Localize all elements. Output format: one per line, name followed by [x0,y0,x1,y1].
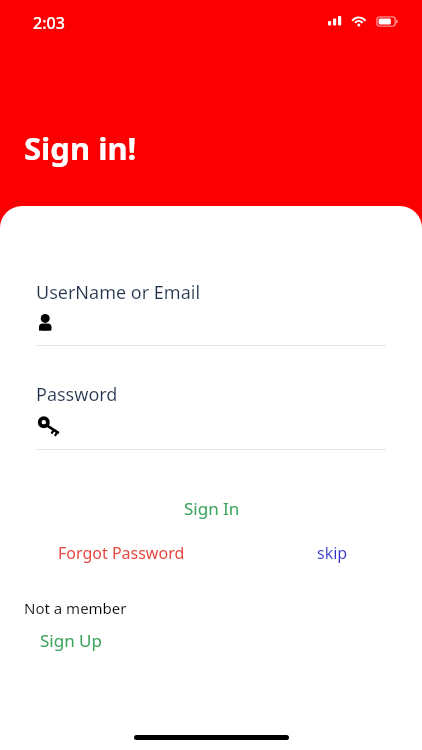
staticText: Not a member [24,598,127,618]
button[interactable]: Forgot Password [56,540,187,566]
other: User name field [36,313,56,333]
button[interactable]: User name field [36,310,386,344]
staticText: Sign In [184,497,240,520]
button[interactable]: Password field [36,412,386,446]
staticText: Forgot Password [58,542,185,564]
staticText: Password [36,382,118,407]
button[interactable]: Sign Up [38,627,104,654]
staticText: Sign in! [24,127,137,169]
staticText: 2:03 [33,12,65,34]
staticText: UserName or Email [36,280,201,305]
button[interactable]: skip [315,540,350,566]
button[interactable]: Sign In [0,493,422,523]
staticText: skip [317,542,348,564]
staticText: Sign Up [40,629,102,652]
other: Password field [36,414,62,438]
